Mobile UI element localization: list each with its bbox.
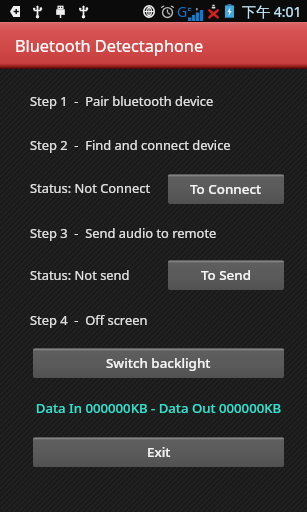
staticText: Status: Not Connect — [30, 179, 151, 197]
staticText: Step 1 - Pair bluetooth device — [30, 92, 214, 110]
button[interactable]: Switch backlight — [33, 348, 284, 378]
staticText: Switch backlight — [106, 354, 211, 372]
button[interactable]: Exit — [33, 437, 284, 467]
staticText: To Send — [201, 266, 251, 284]
staticText: To Connect — [190, 180, 262, 198]
staticText: Status: Not send — [30, 266, 130, 284]
staticText: Step 2 - Find and connect device — [30, 136, 231, 154]
staticText: G — [177, 2, 188, 21]
staticText: Exit — [147, 443, 171, 461]
button[interactable]: To Connect — [168, 174, 284, 204]
button[interactable]: To Send — [168, 260, 284, 290]
staticText: Step 3 - Send audio to remote — [30, 224, 217, 242]
staticText: Step 4 - Off screen — [30, 311, 148, 329]
staticText: Data In 000000KB - Data Out 000000KB — [33, 399, 284, 417]
staticText: Bluetooth Detectaphone — [15, 35, 204, 57]
staticText: 下午 4:01 — [242, 2, 302, 21]
